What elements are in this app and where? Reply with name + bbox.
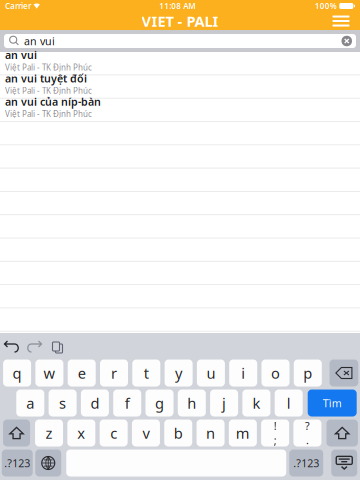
staticText: v	[142, 423, 149, 443]
button[interactable]: q	[3, 359, 31, 386]
button[interactable]: an vui	[0, 52, 360, 75]
button[interactable]: j	[210, 389, 238, 416]
staticText: d	[90, 393, 99, 413]
staticText: i	[241, 363, 245, 383]
button[interactable]: Shift	[326, 419, 358, 446]
button[interactable]: m	[229, 419, 257, 446]
staticText: k	[252, 393, 260, 413]
button[interactable]: an vui tuyệt đối	[0, 75, 360, 99]
staticText: g	[155, 393, 164, 413]
staticText: an vui của níp-bàn	[5, 94, 101, 109]
button[interactable]: p	[294, 359, 322, 386]
button[interactable]: f	[113, 389, 141, 416]
staticText: w	[43, 363, 55, 383]
staticText: c	[110, 423, 117, 443]
button[interactable]: l	[275, 389, 303, 416]
button[interactable]: ?	[293, 419, 321, 446]
button[interactable]: .?123	[289, 449, 323, 476]
button[interactable]: i	[229, 359, 257, 386]
button[interactable]: Tìm	[308, 389, 357, 416]
button[interactable]: Delete	[329, 359, 358, 386]
staticText: q	[13, 363, 22, 383]
button[interactable]: an vui của níp-bàn	[0, 99, 360, 122]
button[interactable]: Switch keyboard	[35, 449, 61, 476]
staticText: f	[125, 393, 130, 413]
staticText: Tìm	[323, 396, 342, 410]
button[interactable]: Shift	[3, 419, 30, 446]
button[interactable]: a	[16, 389, 44, 416]
button[interactable]: e	[68, 359, 96, 386]
button[interactable]: r	[100, 359, 128, 386]
button[interactable]: b	[164, 419, 192, 446]
staticText: r	[111, 363, 117, 383]
staticText: m	[236, 423, 250, 443]
staticText: h	[187, 393, 196, 413]
staticText: 11:08 AM	[159, 1, 195, 11]
staticText: Việt Pali - TK Định Phúc	[5, 62, 92, 73]
staticText: n	[206, 423, 215, 443]
staticText: !	[274, 419, 277, 433]
button[interactable]: k	[242, 389, 270, 416]
button[interactable]: g	[145, 389, 173, 416]
button[interactable]: h	[178, 389, 206, 416]
staticText: Carrier	[5, 1, 31, 11]
staticText: z	[45, 423, 52, 443]
staticText: VIET - PALI	[141, 11, 218, 31]
button[interactable]: c	[100, 419, 128, 446]
button[interactable]: Dismiss keyboard	[331, 449, 357, 476]
button[interactable]: d	[81, 389, 109, 416]
button[interactable]: Menu	[326, 12, 356, 30]
staticText: ;	[274, 433, 277, 447]
staticText: x	[77, 423, 85, 443]
button[interactable]: w	[35, 359, 63, 386]
button[interactable]: Undo	[3, 336, 21, 356]
staticText: e	[78, 363, 86, 383]
button[interactable]: z	[35, 419, 63, 446]
staticText: 100%	[315, 1, 337, 11]
button[interactable]: x	[67, 419, 95, 446]
staticText: t	[144, 363, 149, 383]
button[interactable]: t	[132, 359, 160, 386]
staticText: l	[287, 393, 291, 413]
staticText: ?	[305, 419, 310, 433]
button[interactable]: .?123	[2, 449, 33, 476]
button[interactable]: s	[49, 389, 77, 416]
staticText: .?123	[293, 456, 319, 470]
button[interactable]: o	[261, 359, 289, 386]
button[interactable]: Redo	[25, 336, 43, 356]
staticText: .	[306, 433, 309, 447]
staticText: an vui tuyệt đối	[5, 71, 87, 85]
button[interactable]: n	[196, 419, 224, 446]
staticText: a	[26, 393, 34, 413]
button[interactable]: y	[165, 359, 193, 386]
staticText: .?123	[4, 456, 30, 470]
staticText: y	[175, 363, 182, 383]
button[interactable]: u	[197, 359, 225, 386]
staticText: Việt Pali - TK Định Phúc	[5, 109, 92, 119]
staticText: Việt Pali - TK Định Phúc	[5, 85, 92, 96]
staticText: o	[271, 363, 280, 383]
staticText: b	[174, 423, 183, 443]
staticText: an vui	[5, 48, 37, 62]
staticText: u	[206, 363, 215, 383]
staticText: p	[303, 363, 312, 383]
button[interactable]: !	[261, 419, 289, 446]
button[interactable]: v	[132, 419, 160, 446]
staticText: an vui	[24, 34, 55, 48]
button[interactable]: Paste	[47, 336, 65, 356]
staticText: s	[59, 393, 66, 413]
staticText: j	[222, 393, 226, 413]
